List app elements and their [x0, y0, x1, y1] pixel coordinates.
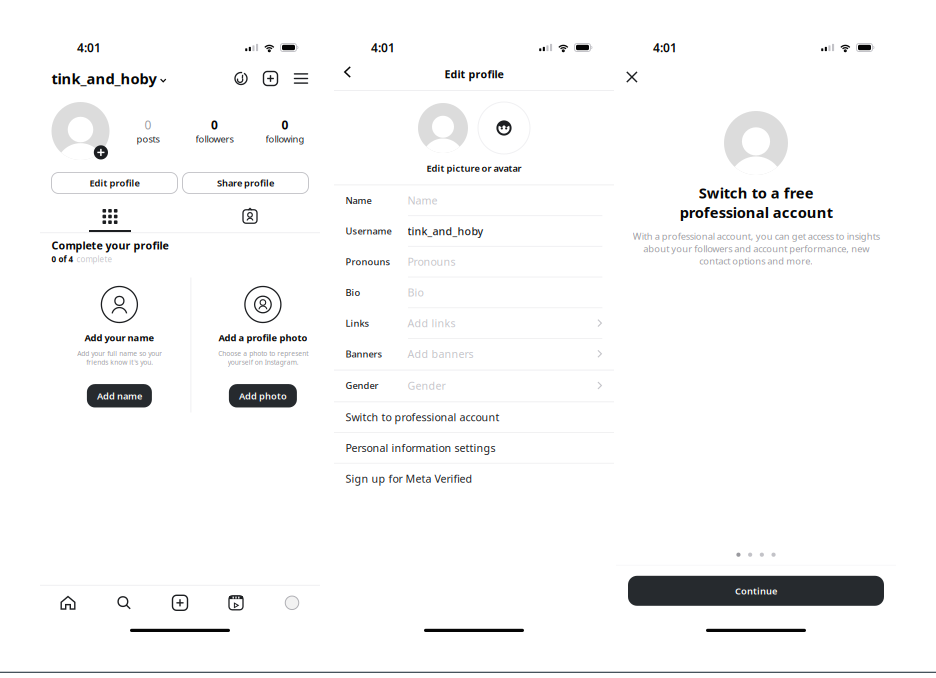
staticText: Banners [345, 348, 382, 360]
button[interactable]: Switch to professional account [334, 402, 614, 433]
staticText: Add your full name so your friends know … [77, 349, 162, 367]
staticText: Switch to professional account [345, 410, 499, 424]
staticText: Add links [407, 316, 455, 330]
button[interactable]: Add name [87, 384, 152, 407]
staticText: Edit profile [89, 177, 139, 189]
staticText: Personal information settings [345, 441, 495, 455]
button[interactable]: New post [263, 71, 277, 85]
staticText: Add photo [239, 390, 287, 402]
button[interactable]: Profile [264, 587, 320, 619]
button[interactable]: Tagged [180, 207, 320, 232]
button[interactable]: Sign up for Meta Verified [334, 464, 614, 494]
staticText: With a professional account, you can get… [632, 230, 879, 267]
staticText: Links [345, 317, 369, 329]
staticText: 4:01 [371, 39, 395, 55]
button[interactable]: Add photo [229, 384, 297, 407]
staticText: Switch to a free professional account [679, 183, 832, 222]
button[interactable]: Edit profile [51, 172, 177, 193]
staticText: Name [345, 194, 371, 206]
staticText: tink_and_hoby [407, 224, 483, 238]
button[interactable]: Links [334, 308, 614, 339]
staticText: Gender [345, 379, 378, 392]
button[interactable]: Banners [334, 339, 614, 370]
staticText: posts [136, 133, 159, 145]
staticText: Bio [407, 285, 423, 299]
staticText: following [265, 133, 304, 145]
staticText: Pronouns [345, 255, 390, 268]
staticText: 0 [144, 117, 151, 133]
staticText: Complete your profile [51, 238, 168, 252]
staticText: Add your name [84, 331, 154, 344]
staticText: 0 [281, 117, 288, 133]
staticText: Edit profile [444, 67, 503, 81]
staticText: followers [195, 133, 233, 145]
staticText: Username [345, 225, 391, 237]
staticText: complete [76, 254, 112, 264]
button[interactable]: Pronouns [334, 247, 614, 277]
staticText: 0 [211, 117, 218, 133]
staticText: 0 of 4 [51, 254, 73, 264]
button[interactable]: Gender [334, 371, 614, 401]
staticText: 4:01 [77, 39, 101, 55]
staticText: Sign up for Meta Verified [345, 471, 472, 486]
staticText: Add name [97, 390, 142, 402]
button[interactable]: Grid [40, 207, 180, 232]
button[interactable]: Home [40, 587, 96, 619]
staticText: Name [407, 193, 437, 207]
button[interactable]: Create [152, 587, 208, 619]
staticText: Bio [345, 286, 360, 299]
staticText: Gender [407, 378, 445, 393]
button[interactable]: Share profile [182, 172, 308, 193]
staticText: Edit picture or avatar [426, 162, 521, 174]
button[interactable]: Personal information settings [334, 433, 614, 464]
button[interactable]: Username [334, 216, 614, 247]
button[interactable]: tink_and_hoby [51, 69, 166, 88]
staticText: Pronouns [407, 255, 455, 269]
staticText: tink_and_hoby [51, 69, 156, 88]
button[interactable]: Menu [293, 71, 308, 85]
staticText: Choose a photo to represent yourself on … [218, 349, 308, 367]
button[interactable]: Name [334, 185, 614, 216]
button[interactable]: Back [338, 60, 357, 84]
staticText: Continue [735, 585, 777, 597]
button[interactable]: Search [96, 587, 152, 619]
button[interactable]: Close [620, 65, 644, 89]
staticText: Add a profile photo [218, 331, 307, 344]
button[interactable]: Bio [334, 277, 614, 308]
button[interactable]: Reels [208, 587, 264, 619]
staticText: 4:01 [653, 39, 677, 55]
staticText: Add banners [407, 347, 473, 361]
button[interactable]: Threads [234, 71, 247, 85]
staticText: Share profile [217, 177, 274, 189]
button[interactable]: Continue [628, 576, 884, 606]
